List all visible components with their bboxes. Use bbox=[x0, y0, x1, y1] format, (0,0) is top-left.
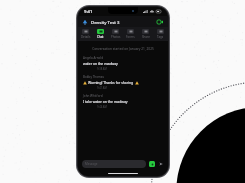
button[interactable]: Video call bbox=[156, 18, 164, 26]
staticText: Share bbox=[142, 35, 150, 39]
staticText: Conversation started on January 21, 2025 bbox=[78, 47, 168, 51]
staticText: Tags bbox=[157, 35, 164, 39]
button[interactable]: Tags bbox=[153, 27, 168, 41]
staticText: 9:41 bbox=[84, 9, 93, 15]
staticText: Photos bbox=[111, 35, 121, 39]
button[interactable]: Forms bbox=[123, 27, 138, 41]
staticText: 9:41 AM bbox=[97, 86, 163, 90]
staticText: Forms bbox=[126, 35, 135, 39]
button[interactable]: Angela Arnold bbox=[78, 56, 168, 71]
button[interactable]: Photos bbox=[108, 27, 123, 41]
staticText: water on the roadway bbox=[83, 61, 118, 66]
button[interactable]: Bobby Thomas bbox=[78, 75, 168, 90]
button[interactable]: John Whitford bbox=[78, 94, 168, 109]
staticText: Details bbox=[81, 35, 91, 39]
button[interactable]: Chat bbox=[93, 27, 108, 41]
button[interactable]: Camera bbox=[149, 161, 155, 167]
button[interactable]: Density Test 3 bbox=[78, 16, 168, 27]
button[interactable]: Details bbox=[78, 27, 93, 41]
staticText: Density Test 3 bbox=[91, 19, 120, 25]
staticText: Bobby Thomas bbox=[83, 75, 104, 79]
staticText: 9:38 AM bbox=[97, 67, 163, 71]
button[interactable]: Share bbox=[138, 27, 153, 41]
staticText: Warning! Thanks for sharing bbox=[88, 80, 134, 85]
staticText: John Whitford bbox=[83, 94, 103, 98]
button[interactable]: Send bbox=[158, 161, 164, 167]
staticText: Angela Arnold bbox=[83, 56, 103, 60]
staticText: I take water on the roadway bbox=[83, 99, 128, 104]
staticText: Message bbox=[85, 162, 98, 166]
button[interactable]: Message bbox=[82, 160, 146, 168]
staticText: Chat bbox=[97, 35, 104, 39]
staticText: 9:44 AM bbox=[97, 105, 163, 109]
